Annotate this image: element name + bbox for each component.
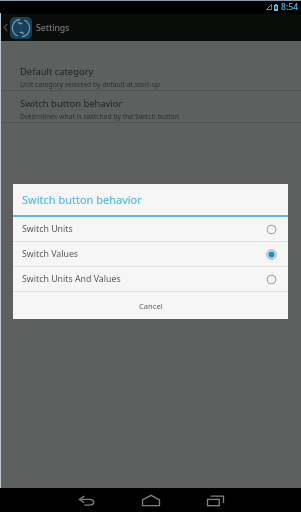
staticText: Unit category selected by default at sta… (20, 80, 161, 89)
staticText: Switch button behavior (22, 192, 142, 207)
staticText: 8:54 (281, 1, 299, 13)
button[interactable]: Switch Values (13, 242, 288, 266)
staticText: Default category (20, 65, 94, 78)
staticText: Settings (36, 22, 70, 34)
button[interactable]: Switch button behavior (0, 91, 301, 122)
staticText: Switch Values (22, 248, 79, 260)
staticText: Determines what is switched by the Switc… (20, 112, 180, 121)
staticText: Switch Units (22, 223, 73, 235)
staticText: Cancel (139, 301, 163, 311)
button[interactable]: Back (77, 488, 97, 512)
staticText: Switch Units And Values (22, 273, 121, 285)
button[interactable]: Navigate up (0, 14, 35, 41)
button[interactable]: Cancel (13, 292, 288, 319)
button[interactable]: Home (141, 488, 161, 512)
button[interactable]: Recent apps (205, 488, 225, 512)
button[interactable]: Switch Units (13, 217, 288, 241)
staticText: Switch button behavior (20, 97, 123, 110)
button[interactable]: Default category (0, 59, 301, 90)
button[interactable]: Switch Units And Values (13, 267, 288, 291)
